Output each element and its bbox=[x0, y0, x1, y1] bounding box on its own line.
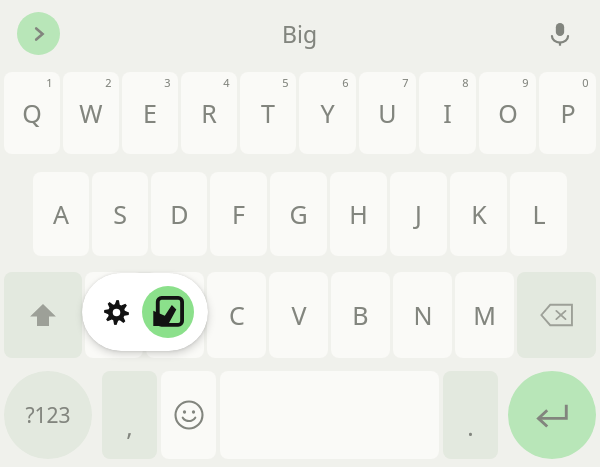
staticText: M bbox=[473, 298, 496, 332]
button[interactable]: K bbox=[450, 172, 507, 256]
staticText: 3 bbox=[164, 75, 171, 90]
staticText: . bbox=[467, 410, 474, 443]
staticText: 9 bbox=[522, 75, 529, 90]
button[interactable]: ?123 bbox=[4, 371, 92, 459]
staticText: E bbox=[143, 96, 157, 130]
staticText: A bbox=[53, 197, 69, 231]
staticText: 7 bbox=[402, 75, 409, 90]
button[interactable]: B bbox=[331, 272, 390, 358]
button[interactable]: Enter bbox=[508, 371, 596, 459]
staticText: U bbox=[378, 96, 397, 130]
staticText: H bbox=[349, 197, 368, 231]
button[interactable]: . bbox=[443, 371, 498, 459]
button[interactable]: Z bbox=[85, 272, 143, 358]
staticText: S bbox=[113, 197, 127, 231]
staticText: P bbox=[560, 96, 576, 130]
button[interactable]: Y bbox=[299, 72, 356, 154]
button[interactable]: E bbox=[122, 72, 178, 154]
button[interactable]: Voice input bbox=[540, 14, 580, 54]
staticText: K bbox=[471, 197, 487, 231]
staticText: V bbox=[291, 298, 307, 332]
staticText: W bbox=[79, 96, 103, 130]
button[interactable]: D bbox=[151, 172, 207, 256]
button[interactable]: W bbox=[63, 72, 119, 154]
button[interactable]: Big bbox=[282, 18, 318, 49]
staticText: G bbox=[289, 197, 308, 231]
button[interactable]: Q bbox=[4, 72, 60, 154]
staticText: O bbox=[498, 96, 518, 130]
button[interactable]: A bbox=[33, 172, 89, 256]
staticText: N bbox=[413, 298, 433, 332]
button[interactable]: Emoji bbox=[161, 371, 216, 459]
button[interactable]: , bbox=[102, 371, 157, 459]
staticText: Y bbox=[320, 96, 335, 130]
staticText: X bbox=[168, 298, 183, 332]
button[interactable]: Settings bbox=[96, 292, 136, 332]
button[interactable]: Backspace bbox=[517, 272, 596, 358]
button[interactable]: G bbox=[270, 172, 327, 256]
button[interactable]: T bbox=[240, 72, 296, 154]
staticText: F bbox=[232, 197, 245, 231]
staticText: 8 bbox=[462, 75, 469, 90]
button[interactable]: H bbox=[330, 172, 387, 256]
staticText: Big bbox=[282, 18, 318, 49]
button[interactable]: S bbox=[92, 172, 148, 256]
button[interactable]: U bbox=[359, 72, 416, 154]
staticText: 5 bbox=[282, 75, 289, 90]
button[interactable]: X bbox=[146, 272, 204, 358]
button[interactable]: One handed mode bbox=[142, 286, 194, 338]
staticText: J bbox=[415, 197, 422, 231]
button[interactable]: P bbox=[539, 72, 596, 154]
button[interactable]: I bbox=[419, 72, 476, 154]
button[interactable]: V bbox=[269, 272, 328, 358]
button[interactable]: N bbox=[393, 272, 452, 358]
staticText: B bbox=[352, 298, 369, 332]
button[interactable]: J bbox=[390, 172, 447, 256]
button[interactable]: Shift bbox=[4, 272, 82, 358]
staticText: 4 bbox=[223, 75, 230, 90]
button[interactable]: M bbox=[455, 272, 514, 358]
staticText: Z bbox=[107, 298, 122, 332]
staticText: 6 bbox=[342, 75, 349, 90]
staticText: T bbox=[261, 96, 275, 130]
staticText: R bbox=[201, 96, 217, 130]
button[interactable]: Expand suggestions bbox=[17, 12, 60, 55]
staticText: ?123 bbox=[25, 401, 71, 430]
button[interactable]: C bbox=[207, 272, 266, 358]
button[interactable]: L bbox=[510, 172, 567, 256]
button[interactable]: R bbox=[181, 72, 237, 154]
staticText: , bbox=[126, 410, 133, 443]
staticText: 2 bbox=[105, 75, 112, 90]
staticText: Q bbox=[22, 96, 42, 130]
staticText: C bbox=[229, 298, 245, 332]
button[interactable]: O bbox=[479, 72, 536, 154]
staticText: L bbox=[532, 197, 546, 231]
staticText: D bbox=[170, 197, 189, 231]
button[interactable]: F bbox=[210, 172, 267, 256]
staticText: 1 bbox=[46, 75, 53, 90]
staticText: I bbox=[443, 96, 452, 130]
staticText: 0 bbox=[582, 75, 589, 90]
